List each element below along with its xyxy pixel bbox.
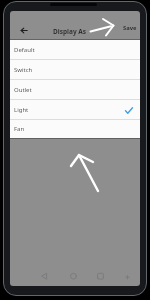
staticText: Switch	[14, 66, 33, 74]
staticText: Display As	[53, 27, 87, 36]
button[interactable]: Fan	[10, 120, 140, 138]
button[interactable]: Default	[10, 40, 140, 60]
button[interactable]: Switch	[10, 60, 140, 80]
staticText: Outlet	[14, 86, 32, 94]
staticText: Save	[123, 24, 137, 32]
button[interactable]: Light	[10, 100, 140, 120]
staticText: Fan	[14, 125, 25, 133]
button[interactable]	[19, 26, 29, 36]
button[interactable]: Save	[123, 24, 137, 32]
button[interactable]: Outlet	[10, 80, 140, 100]
staticText: Default	[14, 46, 35, 54]
staticText: Light	[14, 106, 29, 114]
